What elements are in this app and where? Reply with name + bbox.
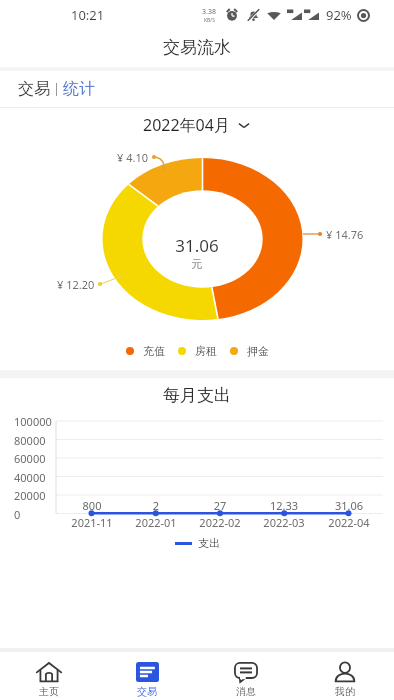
staticText: 800 <box>62 498 122 513</box>
staticText: ¥ 4.10 <box>117 150 148 165</box>
staticText: 元 <box>0 257 394 271</box>
staticText: 2022-03 <box>254 515 314 530</box>
staticText: 3.38 <box>202 7 216 17</box>
staticText: 0 <box>14 507 21 522</box>
staticText: 充值 <box>143 344 165 358</box>
staticText: ¥ 12.20 <box>57 277 95 292</box>
staticText: 支出 <box>198 536 220 550</box>
staticText: KB/S <box>204 17 215 24</box>
button[interactable]: 统计 <box>63 79 95 99</box>
staticText: 31.06 <box>0 234 394 257</box>
button[interactable]: Messages <box>196 652 295 700</box>
staticText: 2022-01 <box>126 515 186 530</box>
staticText: 消息 <box>236 685 256 698</box>
staticText: 交易 <box>18 79 50 99</box>
button[interactable]: 2022年04月 <box>143 114 251 136</box>
staticText: 12.33 <box>254 498 314 513</box>
staticText: 10:21 <box>71 6 105 24</box>
staticText: 押金 <box>247 344 269 358</box>
button[interactable]: Profile <box>295 652 394 700</box>
staticText: 2022-04 <box>319 515 379 530</box>
staticText: 80000 <box>14 433 46 448</box>
staticText: 房租 <box>195 344 217 358</box>
staticText: ¥ 14.76 <box>326 227 364 242</box>
button[interactable]: 交易 <box>18 79 50 99</box>
staticText: 2022年04月 <box>143 114 230 136</box>
button[interactable]: 充值 <box>126 344 165 358</box>
staticText: 统计 <box>63 79 95 99</box>
staticText: 92% <box>326 6 352 24</box>
staticText: 40000 <box>14 470 46 485</box>
staticText: 交易流水 <box>163 37 231 58</box>
staticText: 交易 <box>137 685 157 698</box>
button[interactable]: 房租 <box>178 344 217 358</box>
staticText: 20000 <box>14 488 46 503</box>
button[interactable]: 押金 <box>230 344 269 358</box>
button[interactable]: Transactions <box>98 652 196 700</box>
staticText: 31.06 <box>319 498 379 513</box>
staticText: 60000 <box>14 451 46 466</box>
staticText: 每月支出 <box>0 385 394 406</box>
staticText: 27 <box>190 498 250 513</box>
staticText: 2022-02 <box>190 515 250 530</box>
button[interactable]: Home <box>0 652 98 700</box>
staticText: 2021-11 <box>62 515 122 530</box>
staticText: 100000 <box>14 414 52 429</box>
staticText: 主页 <box>39 685 59 698</box>
staticText: 2 <box>126 498 186 513</box>
staticText: 我的 <box>335 685 355 698</box>
